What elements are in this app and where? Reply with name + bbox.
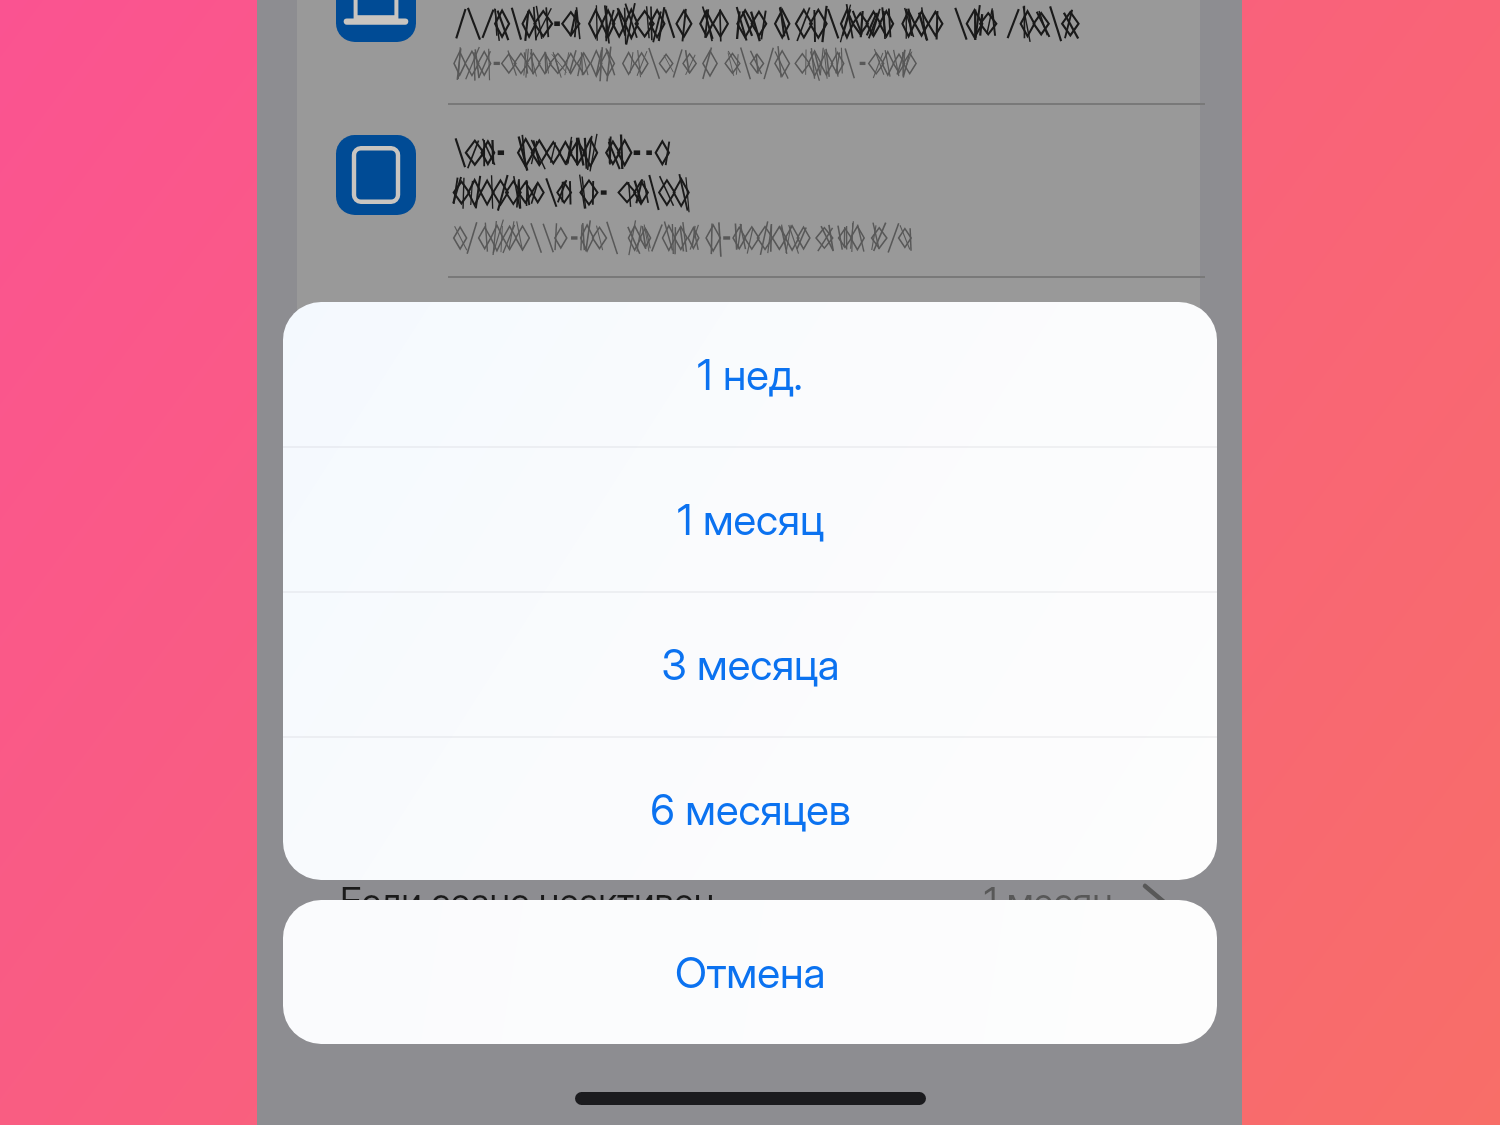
staticText: 3 месяца xyxy=(661,639,840,690)
staticText: Если сеанс неактивен xyxy=(340,878,715,922)
other: Home indicator xyxy=(575,1092,926,1105)
staticText: 1 месяц xyxy=(984,878,1114,922)
staticText: 6 месяцев xyxy=(650,784,851,835)
button[interactable]: 6 месяцев xyxy=(283,738,1217,880)
staticText: Отмена xyxy=(675,947,826,998)
staticText: 1 месяц xyxy=(677,494,824,545)
button[interactable]: 3 месяца xyxy=(283,593,1217,736)
staticText: 1 нед. xyxy=(697,349,803,400)
button[interactable]: 1 месяц xyxy=(283,448,1217,591)
button[interactable]: 1 нед. xyxy=(283,302,1217,446)
button[interactable]: Отмена xyxy=(283,900,1217,1044)
